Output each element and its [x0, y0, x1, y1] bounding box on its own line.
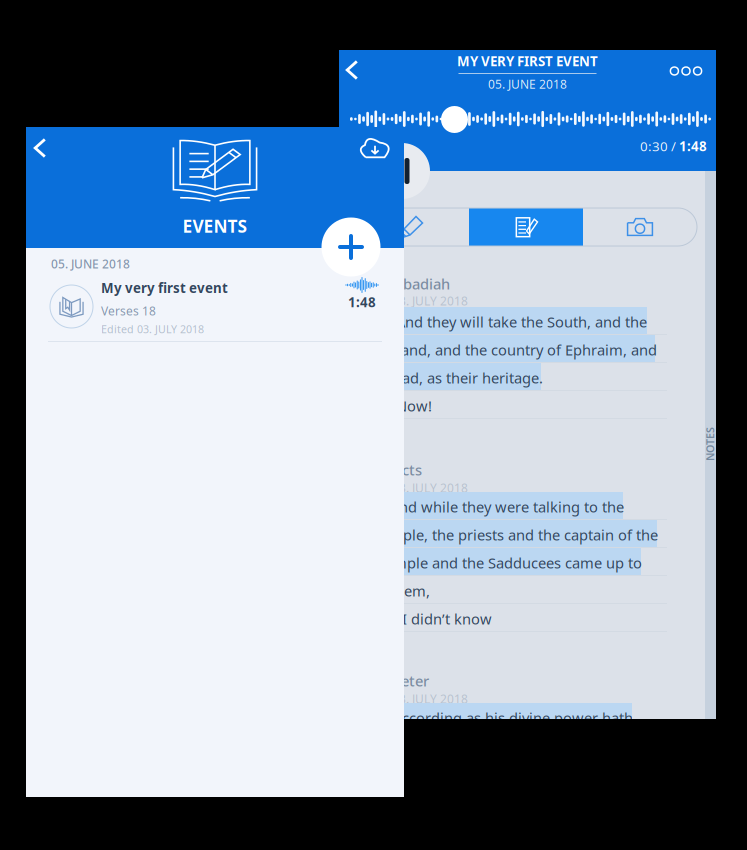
staticText: My very first event: [101, 279, 228, 297]
staticText: 0:30 /: [640, 137, 679, 155]
staticText: 03. JULY 2018: [392, 293, 468, 309]
staticText: EVENTS: [182, 214, 247, 237]
staticText: NOTES: [693, 437, 727, 451]
staticText: 1:48: [348, 293, 376, 311]
staticText: people, the priests and the captain of t…: [377, 525, 658, 544]
staticText: 05. JUNE 2018: [51, 256, 130, 272]
button[interactable]: Back: [26, 127, 54, 169]
button[interactable]: Draw: [355, 208, 469, 246]
staticText: And while they were talking to the: [390, 497, 624, 516]
button[interactable]: More options: [664, 52, 708, 90]
staticText: 03. JULY 2018: [392, 691, 468, 707]
button[interactable]: Add event: [321, 217, 380, 276]
staticText: 1:48: [679, 137, 707, 155]
staticText: MY VERY FIRST EVENT: [457, 52, 598, 70]
staticText: I didn’t know: [402, 609, 492, 628]
staticText: Verses 18: [101, 303, 156, 319]
button[interactable]: Download: [348, 128, 402, 170]
staticText: Now!: [396, 396, 432, 415]
button[interactable]: Pause: [374, 143, 430, 199]
staticText: land, and the country of Ephraim, and: [397, 340, 657, 359]
staticText: Edited 03. JULY 2018: [101, 322, 204, 336]
staticText: And they will take the South, and the: [396, 312, 647, 331]
button[interactable]: Notes: [469, 208, 583, 246]
staticText: 05. JUNE 2018: [488, 76, 567, 92]
staticText: According as his divine power hath: [393, 708, 633, 727]
staticText: Peter: [392, 671, 429, 690]
staticText: 03. JULY 2018: [392, 480, 468, 496]
staticText: Gilead, as their heritage.: [375, 368, 543, 387]
staticText: temple and the Sadducees came up to: [380, 553, 642, 572]
button[interactable]: Back: [339, 51, 365, 89]
staticText: Obadiah: [392, 274, 450, 293]
staticText: them,: [390, 581, 430, 600]
button[interactable]: My very first event: [26, 277, 404, 349]
button[interactable]: Camera: [583, 208, 697, 246]
staticText: Acts: [392, 460, 422, 479]
